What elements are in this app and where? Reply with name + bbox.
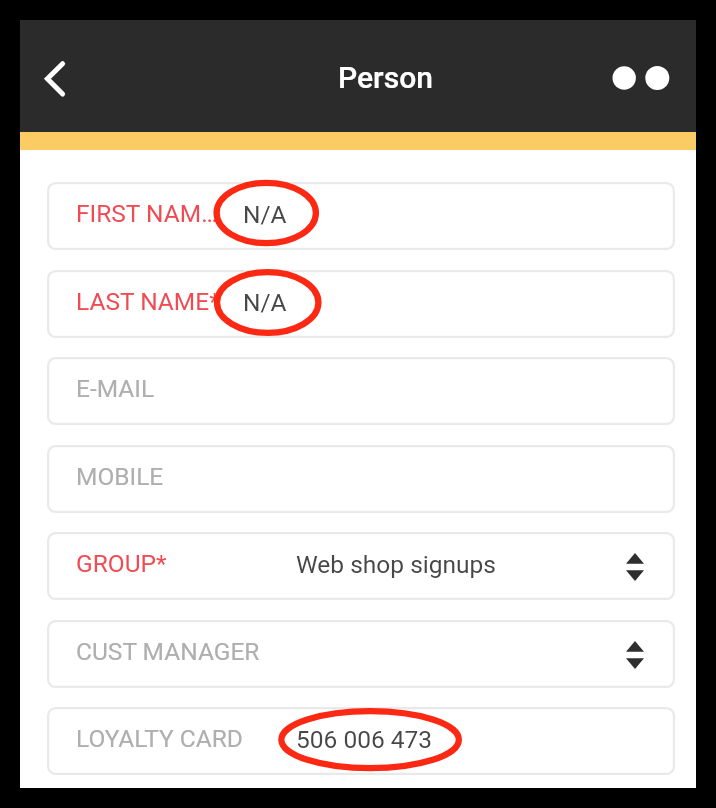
- staticText: LOYALTY CARD: [76, 724, 243, 753]
- button[interactable]: More options: [600, 50, 668, 106]
- staticText: 506 006 473: [296, 725, 433, 754]
- button[interactable]: GROUP*: [47, 532, 675, 600]
- button[interactable]: FIRST NAM…: [47, 182, 675, 250]
- button[interactable]: E-MAIL: [47, 357, 675, 425]
- staticText: N/A: [243, 288, 287, 317]
- staticText: CUST MANAGER: [76, 637, 260, 666]
- staticText: Web shop signups: [296, 550, 496, 579]
- staticText: FIRST NAM…: [76, 199, 218, 228]
- staticText: E-MAIL: [76, 374, 155, 403]
- button[interactable]: MOBILE: [47, 445, 675, 513]
- staticText: N/A: [243, 200, 287, 229]
- button[interactable]: Back: [26, 50, 82, 106]
- staticText: Person: [338, 60, 433, 95]
- button[interactable]: CUST MANAGER: [47, 620, 675, 688]
- staticText: MOBILE: [76, 462, 164, 491]
- staticText: LAST NAME*: [76, 287, 220, 316]
- button[interactable]: LAST NAME*: [47, 270, 675, 338]
- staticText: GROUP*: [76, 549, 167, 578]
- button[interactable]: LOYALTY CARD: [47, 707, 675, 775]
